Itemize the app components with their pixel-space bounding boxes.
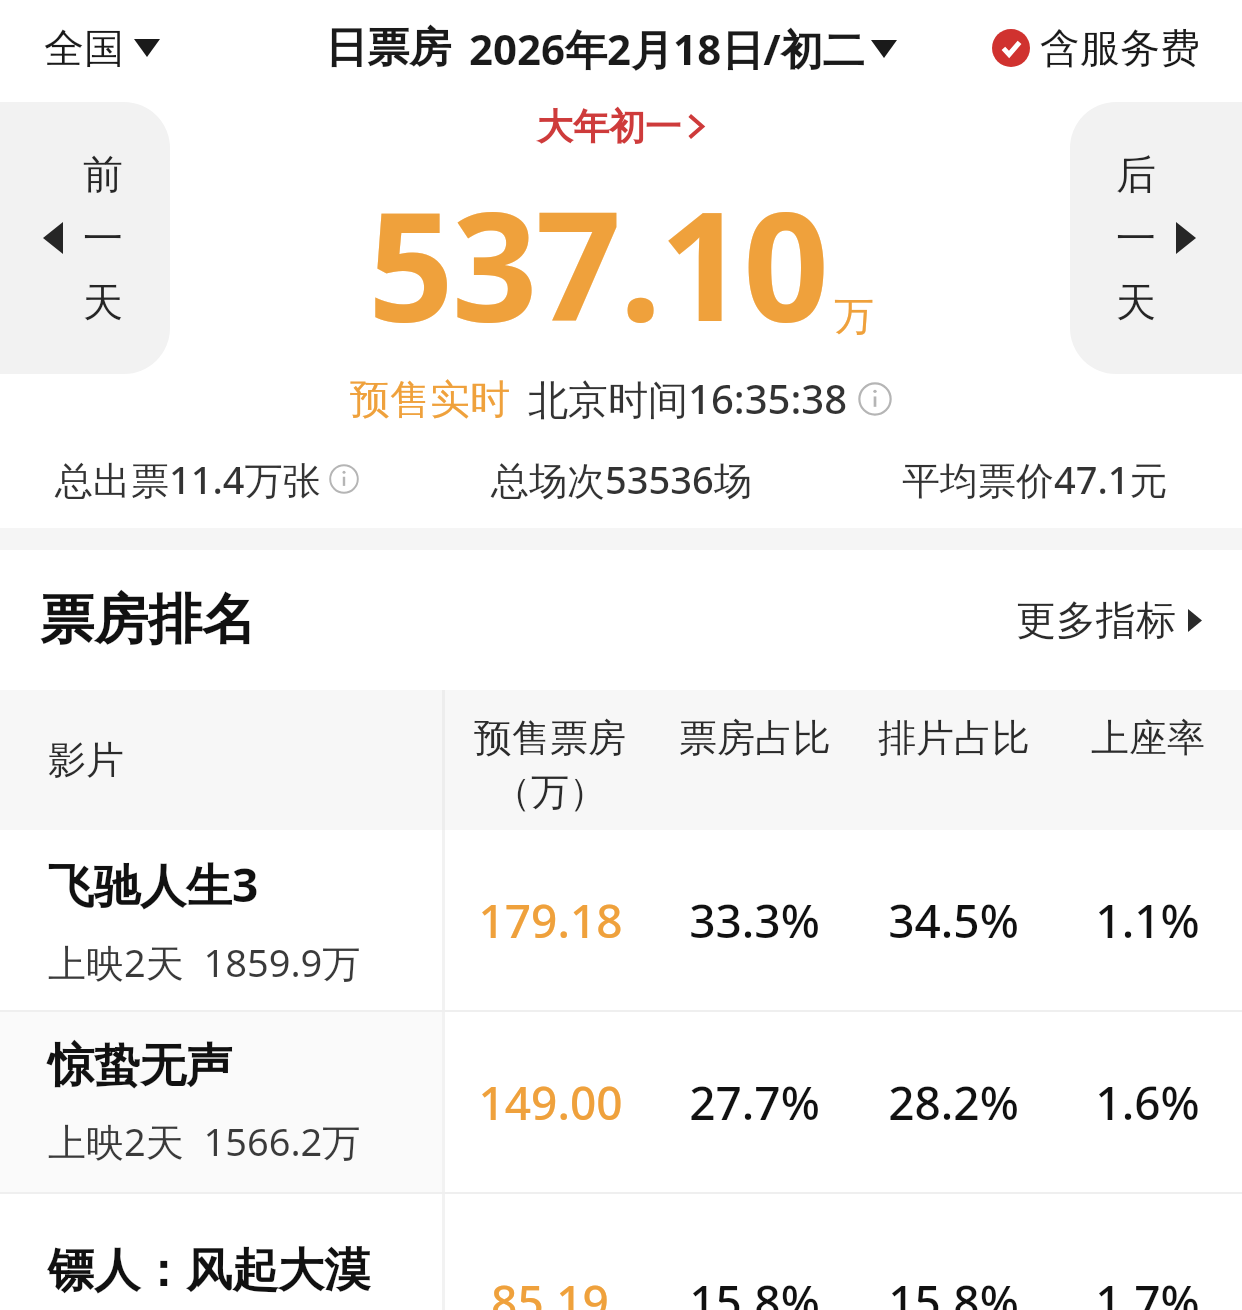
staticText: 总场次53536场: [491, 453, 752, 505]
staticText: 一: [83, 213, 123, 263]
staticText: 含服务费: [1040, 23, 1200, 73]
staticText: 上映2天 1566.2万: [48, 1115, 361, 1167]
staticText: 万: [834, 291, 874, 341]
staticText: 2026年2月18日/初二: [469, 20, 865, 77]
staticText: 33.3%: [689, 889, 820, 952]
button[interactable]: 全国: [40, 17, 164, 79]
staticText: 上映2天 1859.9万: [48, 936, 361, 988]
button[interactable]: 惊蛰无声: [0, 1012, 1242, 1192]
button[interactable]: 后一天: [1070, 102, 1242, 374]
staticText: 平均票价47.1元: [902, 453, 1168, 505]
staticText: 全国: [44, 23, 124, 73]
staticText: 影片: [48, 736, 124, 784]
staticText: 15.8%: [888, 1270, 1019, 1310]
staticText: 大年初一: [537, 104, 681, 149]
button[interactable]: 前一天: [0, 102, 170, 374]
button[interactable]: 总出票11.4万张: [0, 453, 414, 505]
staticText: （万）: [493, 768, 607, 816]
staticText: 天: [1116, 277, 1156, 327]
staticText: 179.18: [478, 889, 623, 952]
staticText: 后: [1116, 149, 1156, 199]
staticText: 日票房: [325, 22, 451, 75]
staticText: 15.8%: [689, 1270, 820, 1310]
staticText: 85.19: [491, 1270, 609, 1310]
button[interactable]: 含服务费: [990, 17, 1202, 79]
staticText: 天: [83, 277, 123, 327]
staticText: 票房排名: [40, 586, 256, 654]
staticText: 排片占比: [878, 714, 1030, 762]
staticText: 上座率: [1091, 714, 1205, 762]
staticText: 北京时间16:35:38: [528, 371, 848, 426]
button[interactable]: 日票房: [321, 14, 901, 83]
staticText: 一: [1116, 213, 1156, 263]
staticText: 惊蛰无声: [48, 1037, 232, 1095]
staticText: 飞驰人生3: [48, 853, 259, 916]
staticText: 镖人：风起大漠: [48, 1242, 370, 1300]
staticText: 总出票11.4万张: [55, 453, 321, 505]
staticText: 预售票房: [474, 714, 626, 762]
button[interactable]: 更多指标: [1012, 587, 1206, 653]
staticText: 1.6%: [1095, 1071, 1200, 1134]
staticText: 34.5%: [888, 889, 1019, 952]
staticText: 前: [83, 149, 123, 199]
staticText: 预售实时: [350, 374, 510, 424]
button[interactable]: 飞驰人生3: [0, 830, 1242, 1010]
staticText: 149.00: [478, 1071, 623, 1134]
button[interactable]: 大年初一: [531, 102, 711, 151]
staticText: 27.7%: [689, 1071, 820, 1134]
button[interactable]: 镖人：风起大漠: [0, 1194, 1242, 1310]
staticText: 票房占比: [679, 714, 831, 762]
staticText: 1.1%: [1095, 889, 1200, 952]
staticText: 537.10: [368, 161, 828, 365]
staticText: 28.2%: [888, 1071, 1019, 1134]
staticText: 更多指标: [1016, 595, 1176, 645]
staticText: 1.7%: [1095, 1270, 1200, 1310]
